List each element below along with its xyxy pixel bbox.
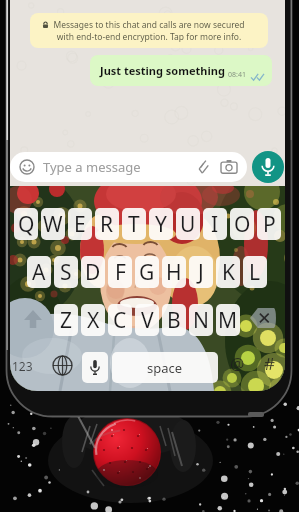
button[interactable]: [82, 352, 108, 383]
button[interactable]: S: [54, 256, 78, 288]
button[interactable]: E: [68, 208, 92, 240]
button[interactable]: [24, 310, 42, 328]
button[interactable]: V: [135, 304, 159, 336]
button[interactable]: [250, 308, 276, 328]
button[interactable]: N: [189, 304, 213, 336]
button[interactable]: O: [230, 208, 254, 240]
button[interactable]: P: [257, 208, 281, 240]
button[interactable]: Messages to this chat and calls are now …: [30, 13, 268, 48]
staticText: Q: [18, 210, 35, 239]
staticText: X: [87, 306, 100, 335]
button[interactable]: F: [108, 256, 132, 288]
staticText: N: [193, 306, 209, 335]
button[interactable]: Y: [149, 208, 173, 240]
button[interactable]: R: [95, 208, 119, 240]
button[interactable]: [52, 355, 73, 376]
button[interactable]: Z: [54, 304, 78, 336]
button[interactable]: [252, 151, 284, 183]
button[interactable]: C: [108, 304, 132, 336]
button[interactable]: J: [189, 256, 213, 288]
button[interactable]: G: [135, 256, 159, 288]
staticText: O: [234, 210, 251, 239]
staticText: I: [211, 210, 219, 239]
staticText: A: [32, 258, 46, 287]
staticText: R: [100, 210, 114, 239]
button[interactable]: H: [162, 256, 186, 288]
button[interactable]: A: [27, 256, 51, 288]
button[interactable]: B: [162, 304, 186, 336]
staticText: E: [74, 210, 86, 239]
staticText: 08:41: [228, 70, 246, 80]
staticText: S: [60, 258, 72, 287]
staticText: W: [43, 210, 63, 239]
staticText: Z: [60, 306, 73, 335]
staticText: C: [113, 306, 127, 335]
staticText: H: [166, 258, 182, 287]
staticText: T: [128, 210, 140, 239]
staticText: V: [141, 306, 154, 335]
button[interactable]: D: [81, 256, 105, 288]
button[interactable]: Just testing something: [90, 55, 272, 86]
button[interactable]: @: [230, 353, 245, 375]
button[interactable]: T: [122, 208, 146, 240]
button[interactable]: U: [176, 208, 200, 240]
button[interactable]: I: [203, 208, 227, 240]
staticText: D: [85, 258, 101, 287]
button[interactable]: #: [264, 352, 275, 375]
staticText: Y: [155, 210, 167, 239]
staticText: space: [147, 359, 183, 377]
button[interactable]: L: [243, 256, 267, 288]
staticText: Messages to this chat and calls are now …: [53, 19, 245, 43]
staticText: K: [222, 258, 235, 287]
button[interactable]: K: [216, 256, 240, 288]
staticText: Type a message: [43, 158, 141, 176]
staticText: B: [167, 306, 181, 335]
button[interactable]: Q: [14, 208, 38, 240]
button[interactable]: space: [112, 352, 218, 383]
staticText: J: [198, 258, 204, 287]
button[interactable]: X: [81, 304, 105, 336]
staticText: M: [218, 306, 238, 335]
staticText: L: [249, 258, 261, 287]
staticText: Just testing something: [100, 63, 225, 78]
staticText: P: [263, 210, 276, 239]
button[interactable]: W: [41, 208, 65, 240]
button[interactable]: M: [216, 304, 240, 336]
button[interactable]: 123: [12, 358, 33, 374]
button[interactable]: Type a message: [10, 152, 247, 182]
staticText: F: [115, 258, 126, 287]
staticText: G: [139, 258, 155, 287]
staticText: U: [180, 210, 196, 239]
